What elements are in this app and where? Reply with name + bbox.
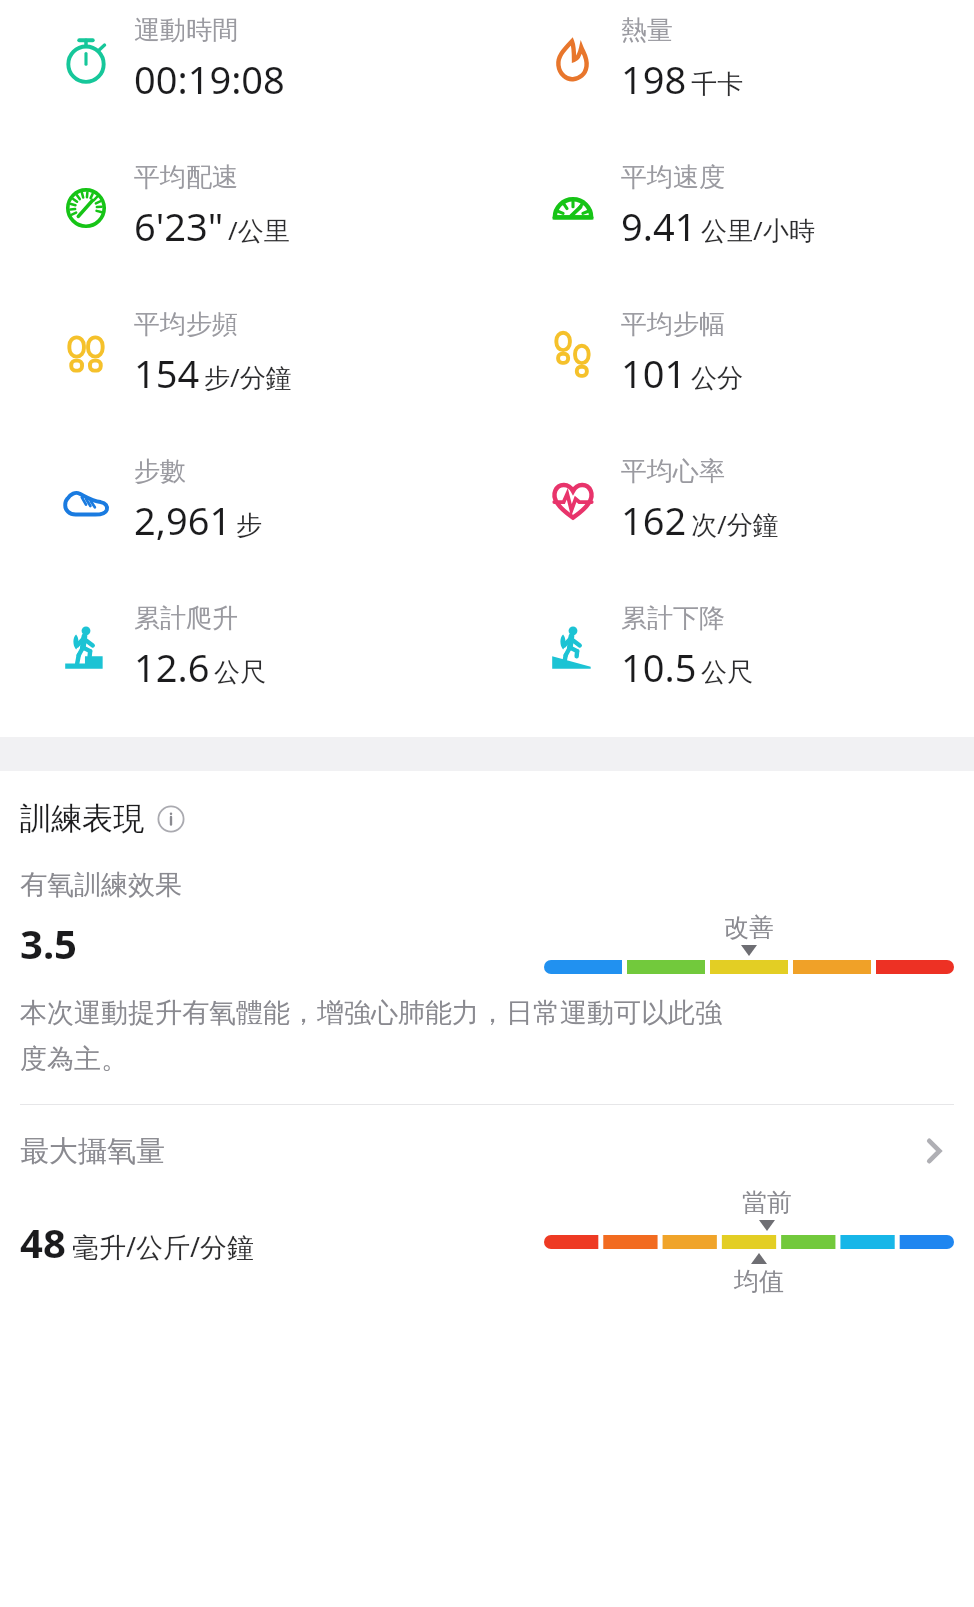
button[interactable]: 平均心率 — [487, 455, 974, 546]
staticText: 平均心率 — [621, 455, 725, 488]
button[interactable]: 平均步幅 — [487, 308, 974, 399]
button[interactable]: 平均配速 — [0, 161, 487, 252]
staticText: 次/分鐘 — [691, 506, 779, 542]
staticText: 9.41 — [621, 200, 697, 252]
staticText: 改善 — [724, 912, 774, 943]
staticText: 154 — [134, 347, 200, 399]
staticText: 均值 — [734, 1266, 784, 1297]
staticText: 累計下降 — [621, 602, 725, 635]
staticText: 平均配速 — [134, 161, 238, 194]
button[interactable]: 平均速度 — [487, 161, 974, 252]
other: More — [914, 1131, 954, 1171]
button[interactable]: 累計下降 — [487, 602, 974, 693]
staticText: 步/分鐘 — [204, 359, 292, 395]
button[interactable]: 平均步頻 — [0, 308, 487, 399]
button[interactable]: 訓練表現 — [20, 797, 186, 840]
staticText: /公里 — [228, 212, 290, 248]
staticText: 3.5 — [20, 916, 77, 970]
staticText: 度為主。 — [20, 1042, 128, 1076]
staticText: 公尺 — [214, 656, 266, 689]
button[interactable]: 累計爬升 — [0, 602, 487, 693]
staticText: 平均速度 — [621, 161, 725, 194]
staticText: 6'23" — [134, 200, 224, 252]
button[interactable]: 熱量 — [487, 14, 974, 105]
staticText: 198 — [621, 53, 687, 105]
staticText: 有氧訓練效果 — [20, 868, 182, 902]
staticText: 運動時間 — [134, 14, 238, 47]
staticText: 00:19:08 — [134, 53, 285, 105]
staticText: 當前 — [742, 1187, 792, 1218]
staticText: 162 — [621, 494, 687, 546]
staticText: 步數 — [134, 455, 186, 488]
staticText: 最大攝氧量 — [20, 1133, 165, 1170]
staticText: 2,961 — [134, 494, 232, 546]
button[interactable]: 運動時間 — [0, 14, 487, 105]
button[interactable]: Info — [156, 804, 186, 834]
staticText: 12.6 — [134, 641, 210, 693]
staticText: 平均步幅 — [621, 308, 725, 341]
staticText: 公尺 — [701, 656, 753, 689]
button[interactable]: 步數 — [0, 455, 487, 546]
staticText: 公里/小時 — [701, 212, 815, 248]
staticText: 累計爬升 — [134, 602, 238, 635]
staticText: 訓練表現 — [20, 799, 144, 838]
staticText: 平均步頻 — [134, 308, 238, 341]
staticText: 公分 — [691, 362, 743, 395]
staticText: 48 — [20, 1215, 66, 1269]
staticText: 熱量 — [621, 14, 673, 47]
staticText: 101 — [621, 347, 687, 399]
staticText: 步 — [236, 509, 262, 542]
staticText: 本次運動提升有氧體能，增強心肺能力，日常運動可以此強 — [20, 996, 722, 1030]
staticText: 千卡 — [691, 68, 743, 101]
staticText: 毫升/公斤/分鐘 — [72, 1228, 255, 1265]
button[interactable]: 最大攝氧量 — [20, 1131, 954, 1171]
staticText: 10.5 — [621, 641, 697, 693]
